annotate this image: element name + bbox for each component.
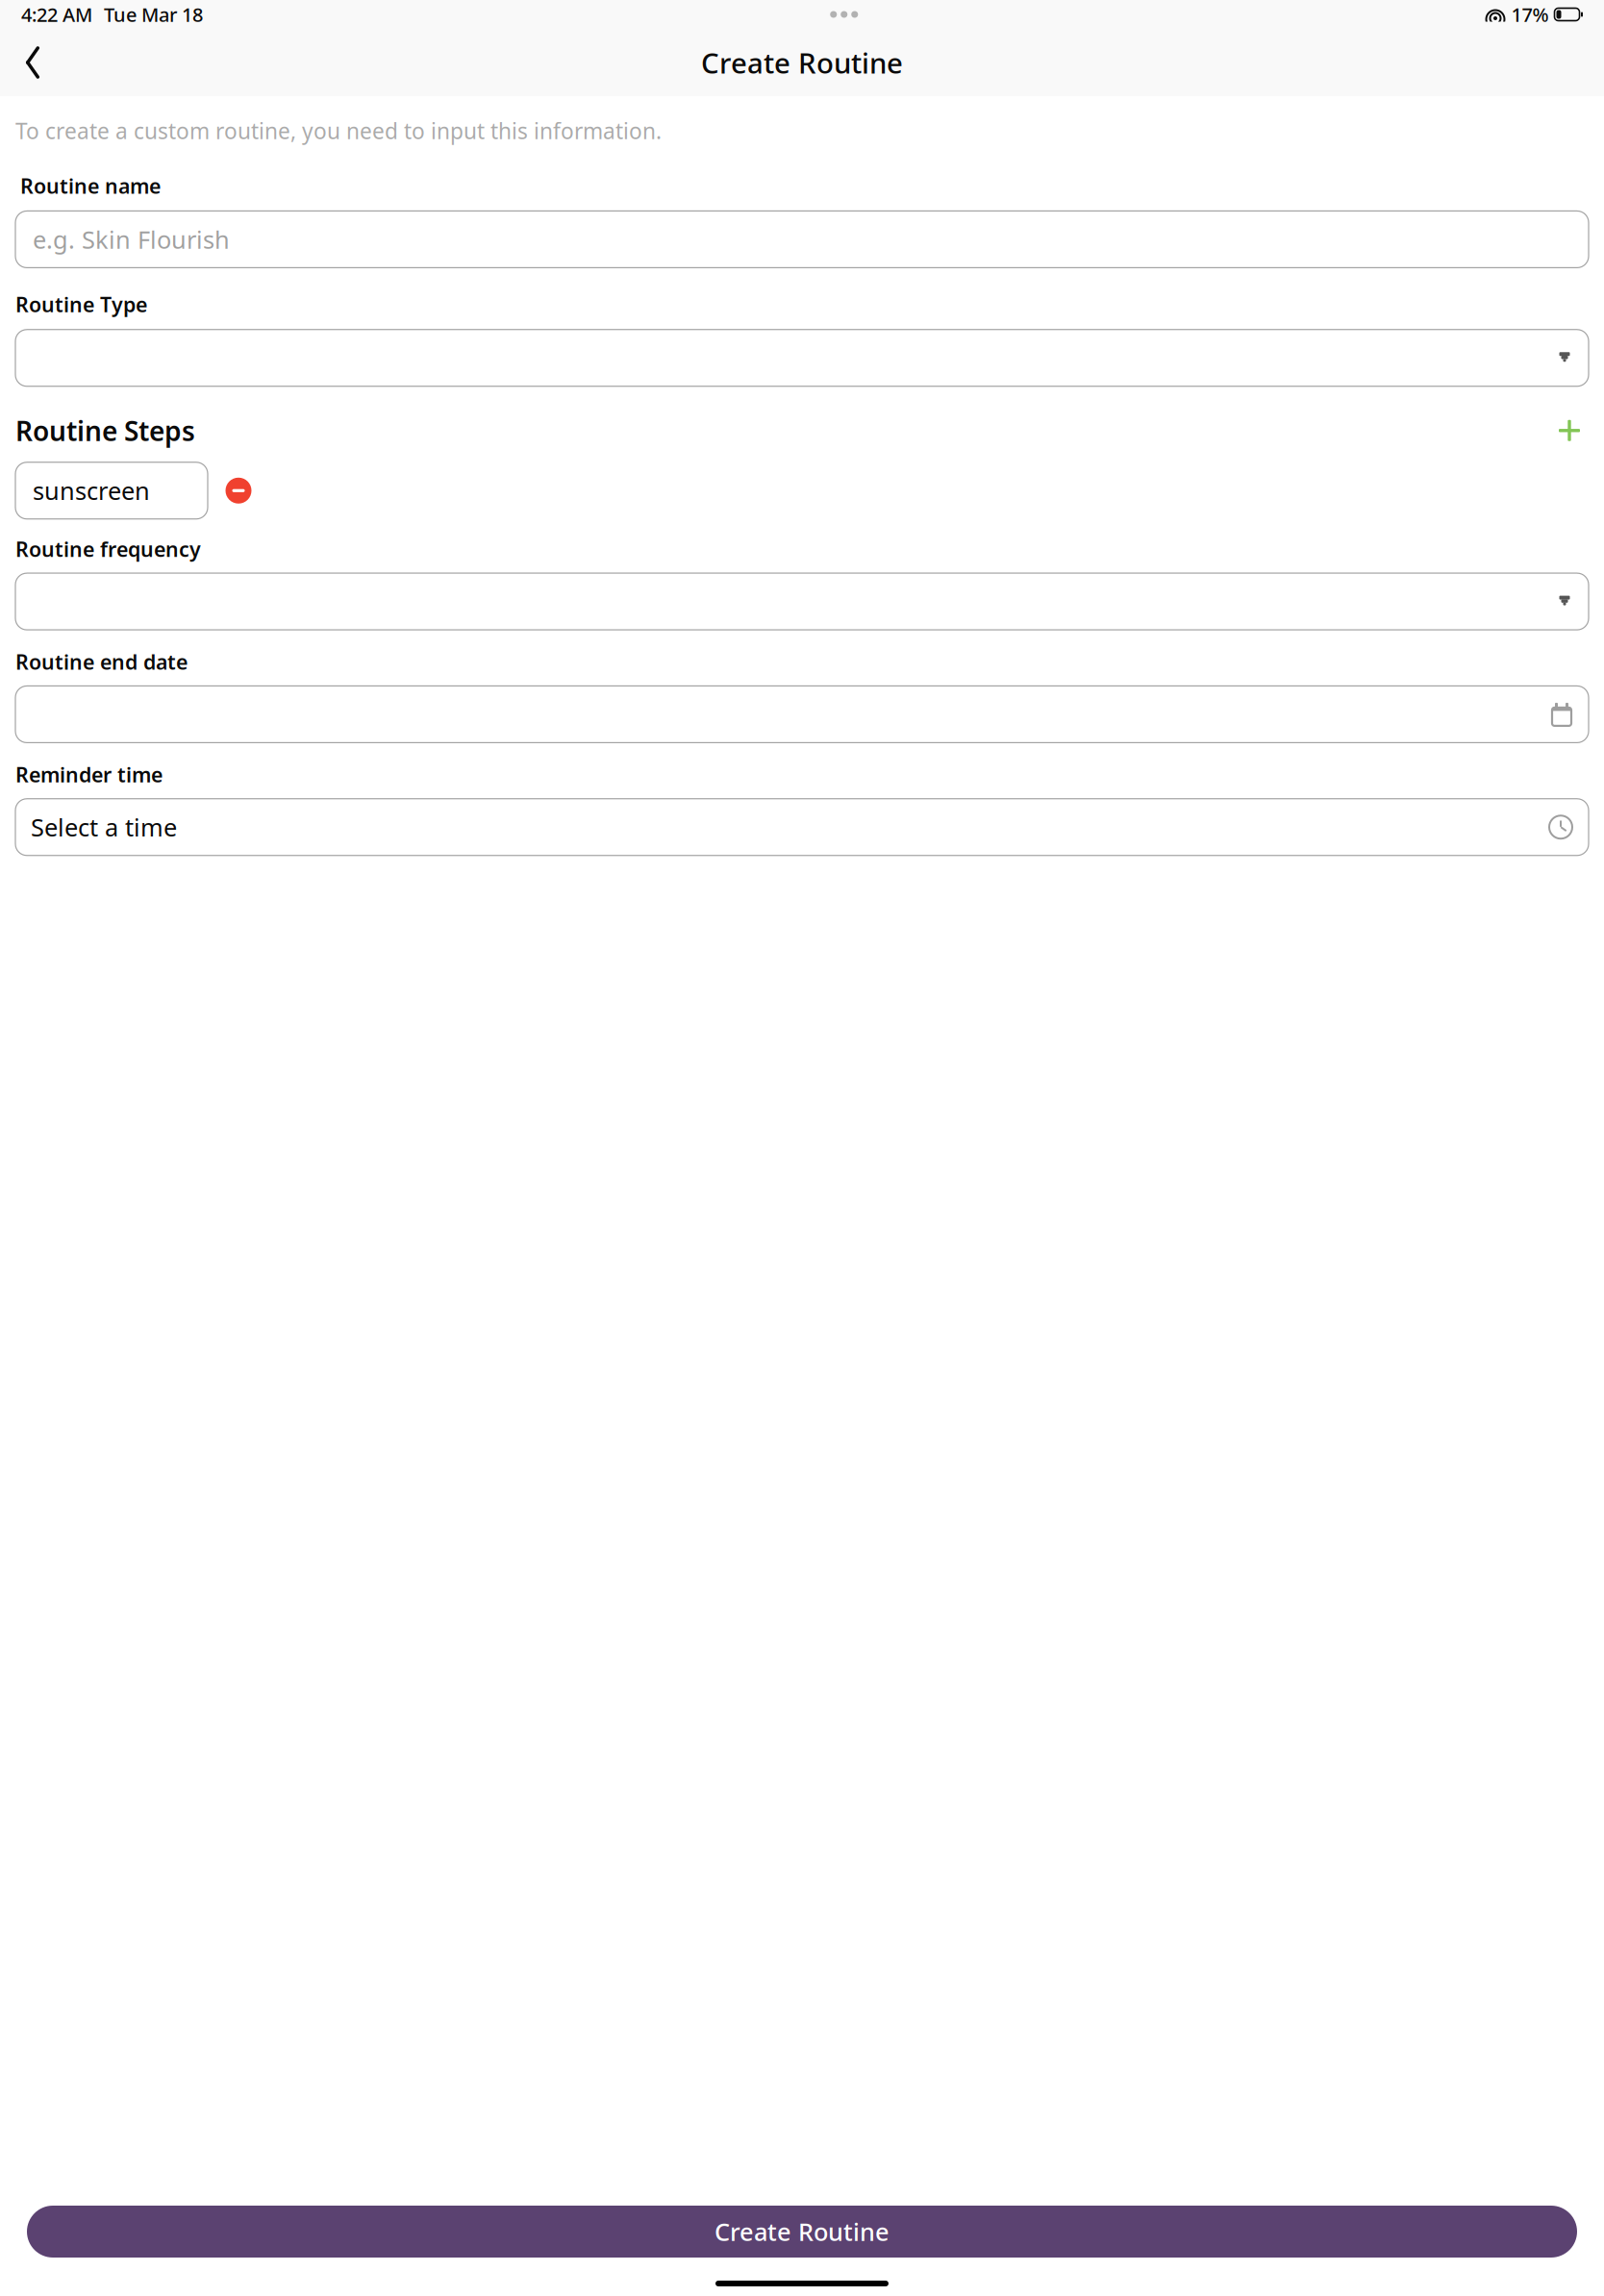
staticText: sunscreen (33, 474, 150, 507)
staticText: Select a time (31, 811, 177, 843)
staticText: 4:22 AM (21, 2, 92, 27)
staticText: Routine Type (15, 291, 147, 318)
staticText: To create a custom routine, you need to … (15, 116, 662, 145)
button[interactable] (15, 573, 1589, 630)
staticText: Routine end date (15, 648, 188, 675)
button[interactable]: Create Routine (27, 2206, 1577, 2258)
button[interactable]: Back (10, 39, 56, 86)
staticText: Tue Mar 18 (104, 2, 203, 27)
staticText: e.g. Skin Flourish (33, 223, 230, 255)
staticText: Reminder time (15, 761, 163, 788)
button[interactable]: Remove step (217, 469, 260, 512)
button[interactable]: Add step (1550, 411, 1589, 450)
button[interactable] (15, 330, 1589, 386)
button[interactable]: sunscreen (15, 462, 208, 519)
staticText: Create Routine (714, 2215, 890, 2248)
button[interactable]: e.g. Skin Flourish (15, 211, 1589, 268)
staticText: Routine frequency (15, 535, 201, 563)
staticText: 17% (1511, 2, 1549, 27)
staticText: Routine name (20, 172, 161, 199)
button[interactable]: Select a time (15, 799, 1589, 856)
staticText: Create Routine (701, 44, 903, 81)
button[interactable] (15, 686, 1589, 743)
staticText: Routine Steps (15, 413, 195, 448)
